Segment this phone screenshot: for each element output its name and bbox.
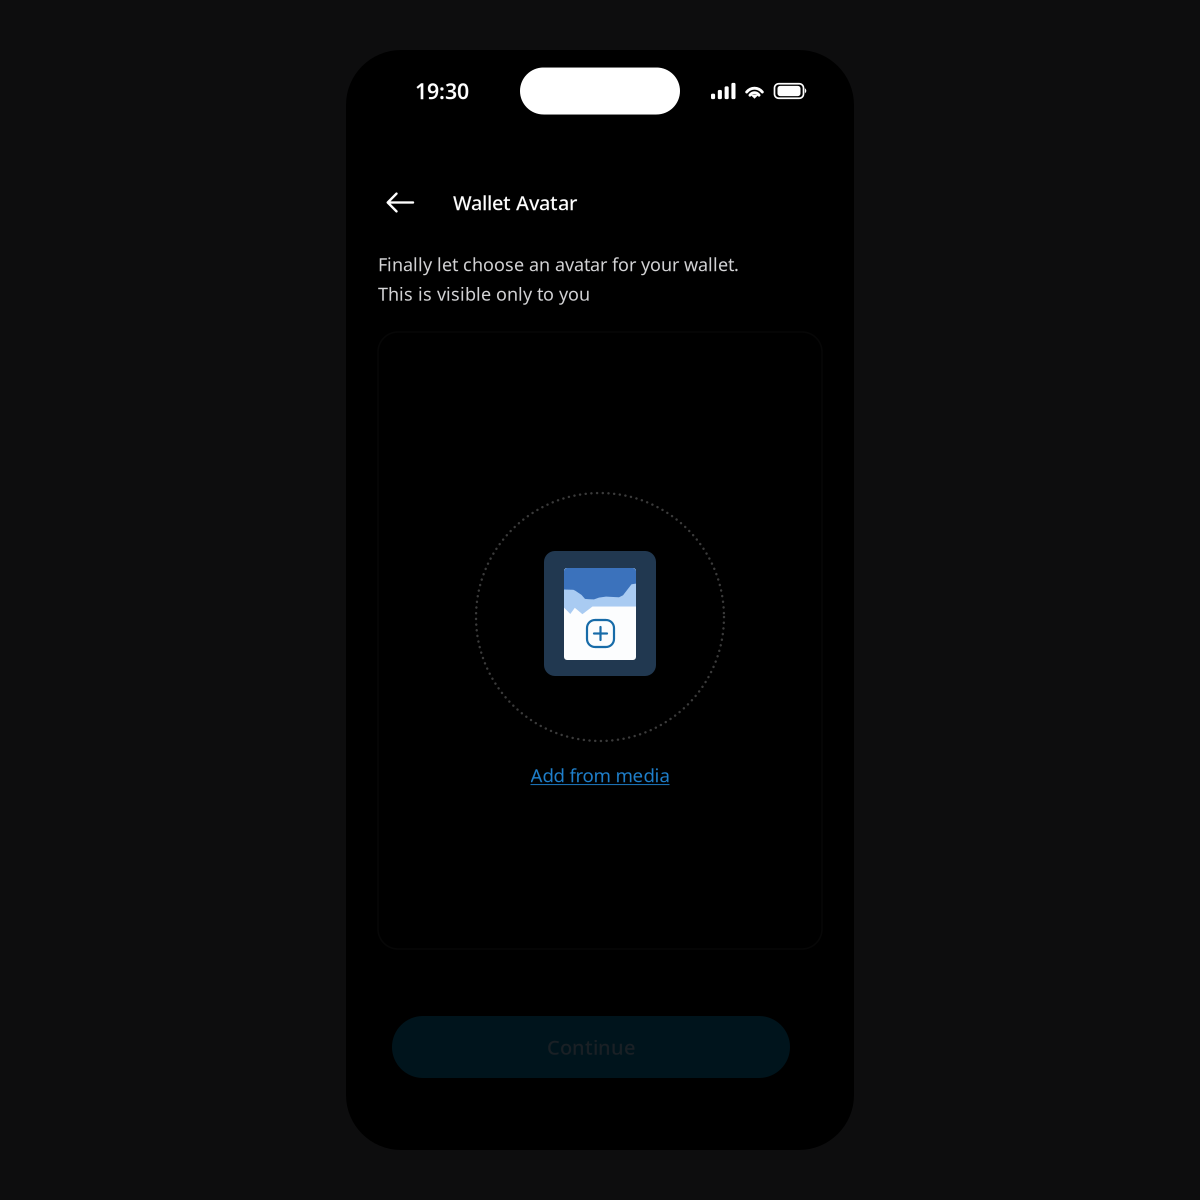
button[interactable]: Continue <box>392 1016 790 1078</box>
staticText: Finally let choose an avatar for your wa… <box>378 252 739 276</box>
staticText: 19:30 <box>415 77 469 105</box>
button[interactable]: Choose avatar photo <box>476 493 724 741</box>
staticText: Add from media <box>530 762 669 788</box>
button[interactable]: Back <box>378 182 422 223</box>
staticText: This is visible only to you <box>378 281 590 306</box>
button[interactable]: Add from media <box>520 761 680 789</box>
staticText: Continue <box>547 1034 635 1060</box>
staticText: Wallet Avatar <box>453 189 577 216</box>
